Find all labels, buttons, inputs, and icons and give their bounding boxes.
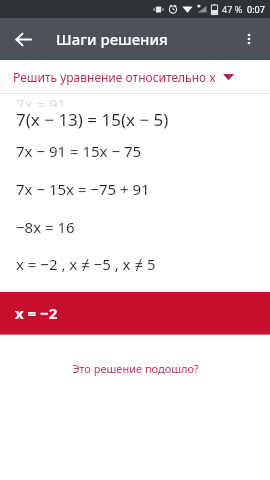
staticText: x = −2 , x ≠ −5 , x ≠ 5: [16, 254, 156, 274]
staticText: 7x − 15x = −75 + 91: [16, 179, 150, 199]
staticText: x = −2: [15, 303, 58, 323]
staticText: 47 %: [222, 3, 243, 15]
staticText: 7x = 91: [16, 94, 67, 107]
staticText: Решить уравнение относительно x: [13, 69, 216, 85]
staticText: Это решение подошло?: [72, 361, 199, 376]
staticText: 7(x − 13) = 15(x − 5): [16, 108, 169, 131]
button[interactable]: More options: [232, 22, 266, 56]
button[interactable]: Решить уравнение относительно x: [0, 60, 270, 93]
button[interactable]: x = −2: [0, 292, 270, 334]
staticText: −8x = 16: [16, 217, 75, 237]
staticText: 0:07: [247, 3, 265, 15]
button[interactable]: Это решение подошло?: [0, 361, 270, 376]
staticText: 7x − 91 = 15x − 75: [16, 141, 142, 161]
button[interactable]: Back: [6, 22, 40, 56]
staticText: Шаги решения: [56, 29, 168, 49]
